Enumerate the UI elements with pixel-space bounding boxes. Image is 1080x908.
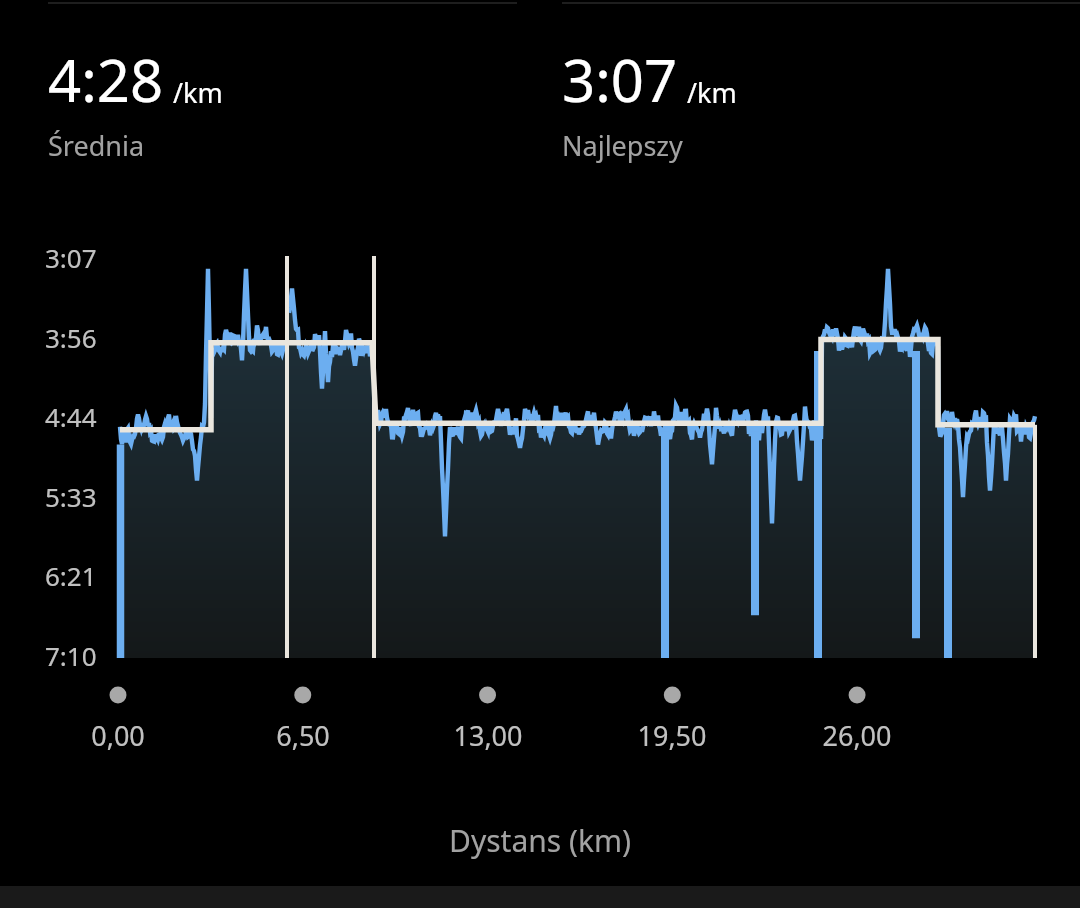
staticText: 13,00 — [413, 717, 563, 754]
staticText: 4:44 — [45, 399, 97, 434]
staticText: 6,50 — [228, 717, 378, 754]
staticText: 3:07 — [562, 40, 678, 119]
staticText: /km — [173, 74, 223, 111]
staticText: 3:07 — [45, 240, 97, 275]
staticText: 0,00 — [43, 717, 193, 754]
staticText: 6:21 — [45, 558, 97, 593]
staticText: Najlepszy — [562, 127, 683, 164]
staticText: Średnia — [48, 127, 145, 164]
staticText: Dystans (km) — [449, 820, 632, 861]
staticText: 7:10 — [45, 638, 97, 673]
staticText: 26,00 — [782, 717, 932, 754]
button[interactable]: 4:28 — [48, 40, 223, 164]
staticText: 19,50 — [597, 717, 747, 754]
staticText: 3:56 — [45, 320, 97, 355]
staticText: 4:28 — [48, 40, 164, 119]
button[interactable]: 3:07 — [562, 40, 737, 164]
staticText: 5:33 — [45, 479, 97, 514]
staticText: /km — [687, 74, 737, 111]
